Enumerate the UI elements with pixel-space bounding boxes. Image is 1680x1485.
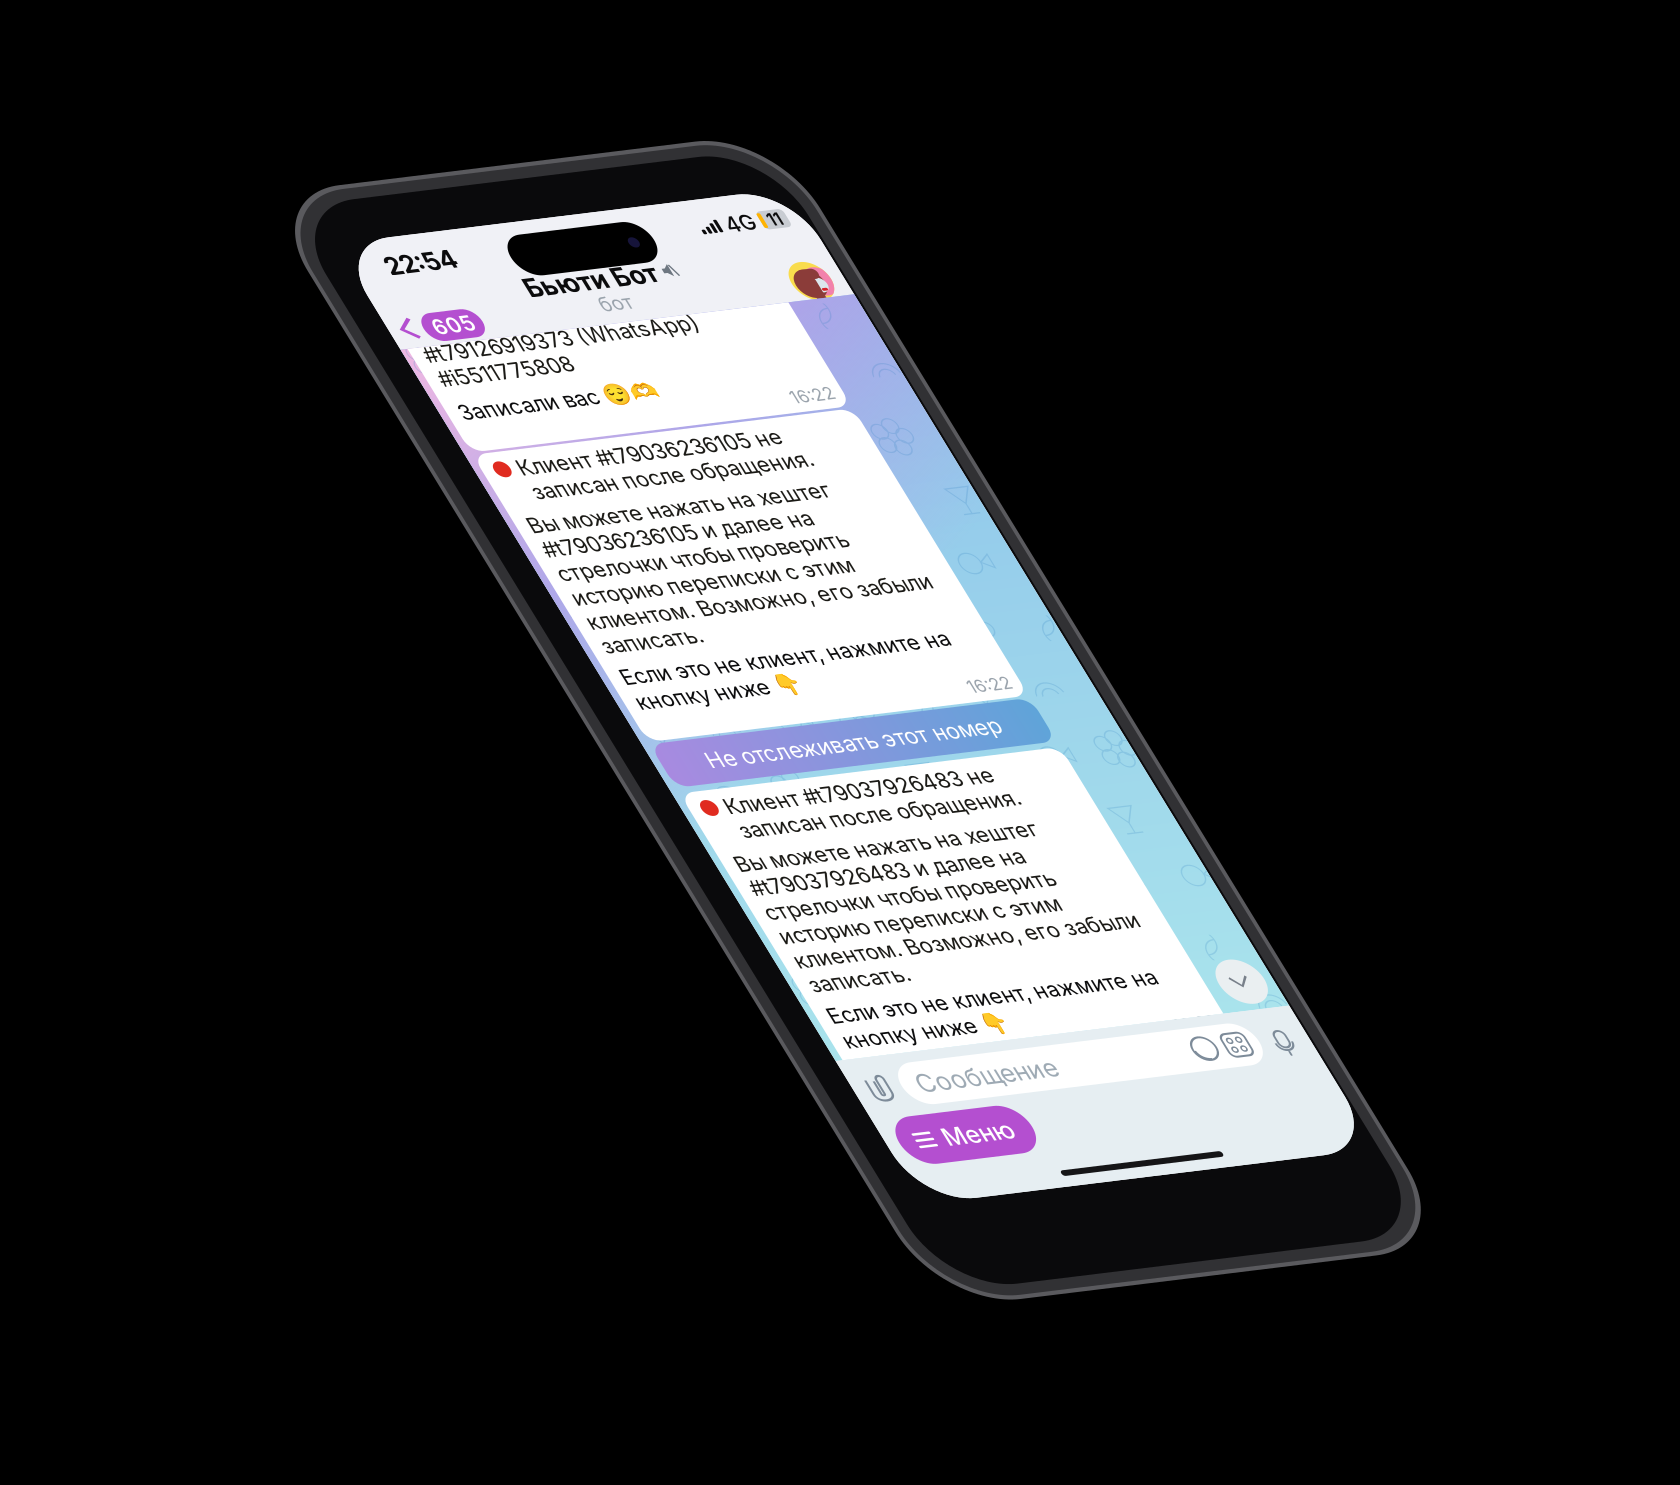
staticText: Вы можете нажать на хештег #t79036236105… bbox=[16, 242, 314, 370]
